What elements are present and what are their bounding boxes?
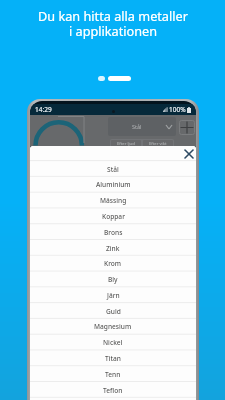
button[interactable]: Magnesium — [30, 318, 196, 334]
button[interactable]: Titan — [30, 350, 196, 366]
button[interactable]: Zink — [30, 240, 196, 256]
staticText: Aluminium — [96, 180, 131, 189]
button[interactable]: Krom — [30, 255, 196, 271]
staticText: Teflon — [103, 386, 123, 395]
button[interactable]: Nickel — [30, 334, 196, 350]
button[interactable]: Brons — [30, 224, 196, 240]
staticText: Efter vikt — [149, 141, 167, 147]
staticText: 100% — [169, 105, 186, 114]
button[interactable]: Mässing — [30, 192, 196, 208]
staticText: Brons — [104, 228, 123, 237]
button[interactable]: Efter ljud — [111, 140, 141, 147]
staticText: Mässing — [100, 196, 127, 205]
staticText: Tenn — [105, 370, 121, 379]
staticText: Järn — [107, 291, 120, 300]
staticText: Stål — [132, 123, 142, 130]
staticText: Stål — [107, 165, 119, 174]
staticText: Titan — [105, 354, 121, 363]
button[interactable]: Stål — [30, 161, 196, 177]
staticText: Zink — [106, 244, 120, 253]
staticText: Guld — [106, 307, 121, 316]
button[interactable]: Add — [179, 120, 195, 135]
button[interactable]: Teflon — [30, 382, 196, 398]
button[interactable]: Close — [182, 147, 195, 160]
button[interactable]: Aluminium — [30, 176, 196, 192]
staticText: Magnesium — [94, 322, 132, 331]
button[interactable]: Koppar — [30, 208, 196, 224]
staticText: Efter ljud — [117, 141, 135, 147]
button[interactable]: Tenn — [30, 366, 196, 382]
button[interactable]: Bly — [30, 271, 196, 287]
staticText: 14:29 — [35, 105, 52, 114]
staticText: Koppar — [102, 212, 125, 221]
button[interactable]: Guld — [30, 303, 196, 319]
staticText: Nickel — [103, 338, 123, 347]
button[interactable]: Efter vikt — [143, 140, 173, 147]
staticText: Du kan hitta alla metaller i applikation… — [38, 7, 188, 39]
staticText: Bly — [108, 275, 118, 284]
button[interactable]: Järn — [30, 287, 196, 303]
staticText: Krom — [104, 259, 122, 268]
button[interactable]: Stål — [108, 117, 176, 136]
